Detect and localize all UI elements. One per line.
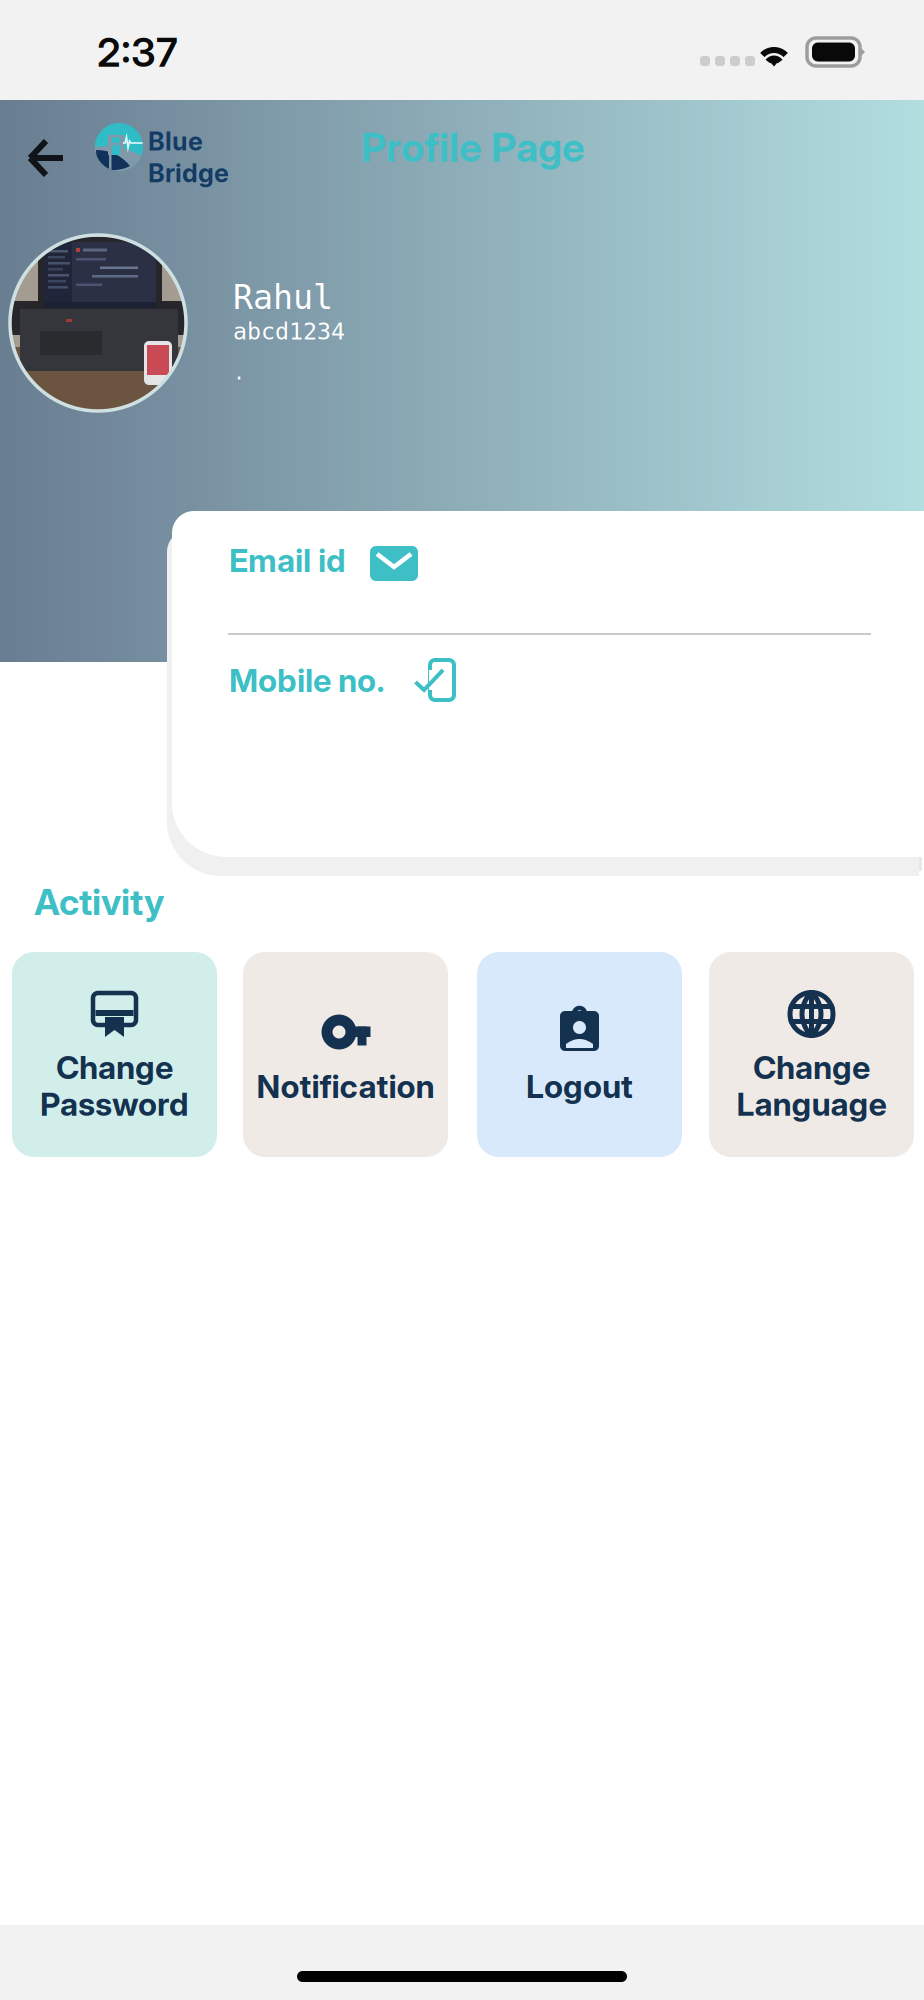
staticText: Profile Page [361,123,585,171]
button[interactable]: Logout [477,952,682,1157]
staticText: Change [753,1048,870,1087]
button[interactable]: Mobile no. [228,637,924,727]
staticText: Activity [34,880,164,924]
staticText: Language [736,1085,886,1123]
button[interactable]: Email id [228,516,924,606]
button[interactable]: Change [709,952,914,1157]
staticText: Email id [229,541,346,580]
staticText: Notification [256,1067,434,1106]
staticText: Mobile no. [229,661,385,700]
staticText: abcd1234 [233,318,345,345]
staticText: Bridge [148,158,229,188]
staticText: Change [56,1048,173,1087]
staticText: Rahul [233,278,333,317]
button[interactable]: Back [7,118,86,198]
staticText: Password [40,1085,189,1123]
button[interactable]: Change [12,952,217,1157]
staticText: Blue [148,126,203,157]
staticText: . [233,361,245,384]
staticText: Logout [526,1067,633,1106]
staticText: 2:37 [97,28,178,76]
button[interactable]: Notification [243,952,448,1157]
